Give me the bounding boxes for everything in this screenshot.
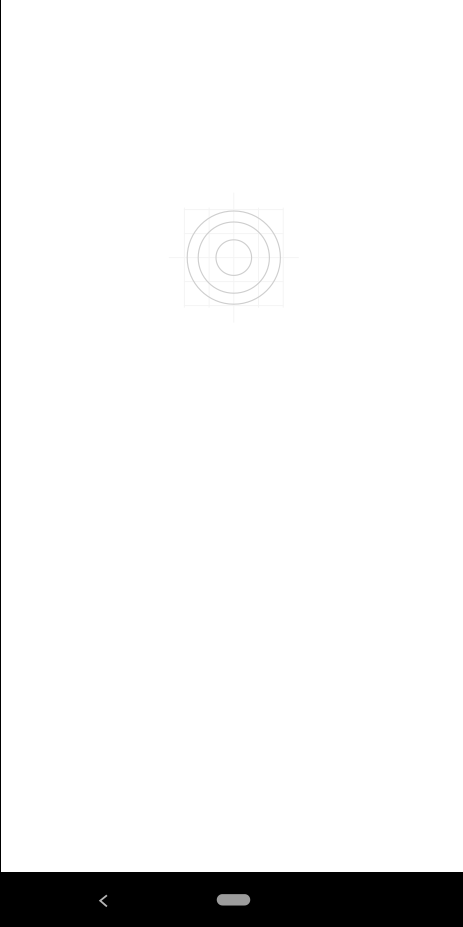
button[interactable]: Home	[201, 873, 265, 927]
button[interactable]: Back	[76, 874, 130, 927]
